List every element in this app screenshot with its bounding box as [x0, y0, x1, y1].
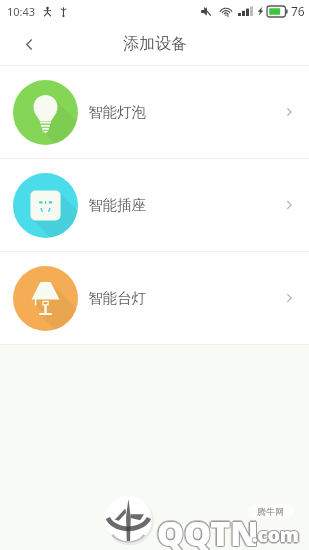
staticText: .com: [251, 521, 298, 547]
staticText: 10:43: [7, 4, 36, 19]
staticText: .com: [251, 522, 298, 548]
staticText: .com: [251, 523, 298, 549]
staticText: 76: [291, 3, 305, 19]
staticText: QQTN: [157, 508, 259, 550]
staticText: .com: [253, 521, 300, 547]
button[interactable]: 智能台灯: [0, 252, 309, 344]
button[interactable]: 智能插座: [0, 159, 309, 251]
staticText: .com: [254, 522, 301, 548]
staticText: 腾牛网: [257, 506, 284, 517]
button[interactable]: Open 智能台灯: [272, 281, 306, 315]
staticText: QQTN: [156, 509, 258, 550]
staticText: 智能插座: [88, 196, 146, 214]
staticText: .com: [253, 523, 300, 549]
button[interactable]: Open 智能灯泡: [272, 95, 306, 129]
button[interactable]: Back: [0, 22, 58, 66]
staticText: 添加设备: [123, 34, 187, 54]
staticText: QQTN: [158, 511, 260, 550]
staticText: .com: [252, 521, 299, 547]
staticText: QQTN: [158, 510, 260, 550]
staticText: QQTN: [155, 510, 257, 550]
staticText: QQTN: [157, 510, 259, 550]
staticText: .com: [252, 522, 299, 548]
staticText: QQTN: [156, 511, 258, 550]
staticText: 智能台灯: [88, 289, 146, 307]
staticText: .com: [252, 524, 299, 550]
button[interactable]: Open 智能插座: [272, 188, 306, 222]
button[interactable]: 智能灯泡: [0, 66, 309, 158]
staticText: QQTN: [157, 511, 259, 550]
staticText: QQTN: [158, 509, 260, 550]
staticText: 智能灯泡: [88, 103, 146, 121]
